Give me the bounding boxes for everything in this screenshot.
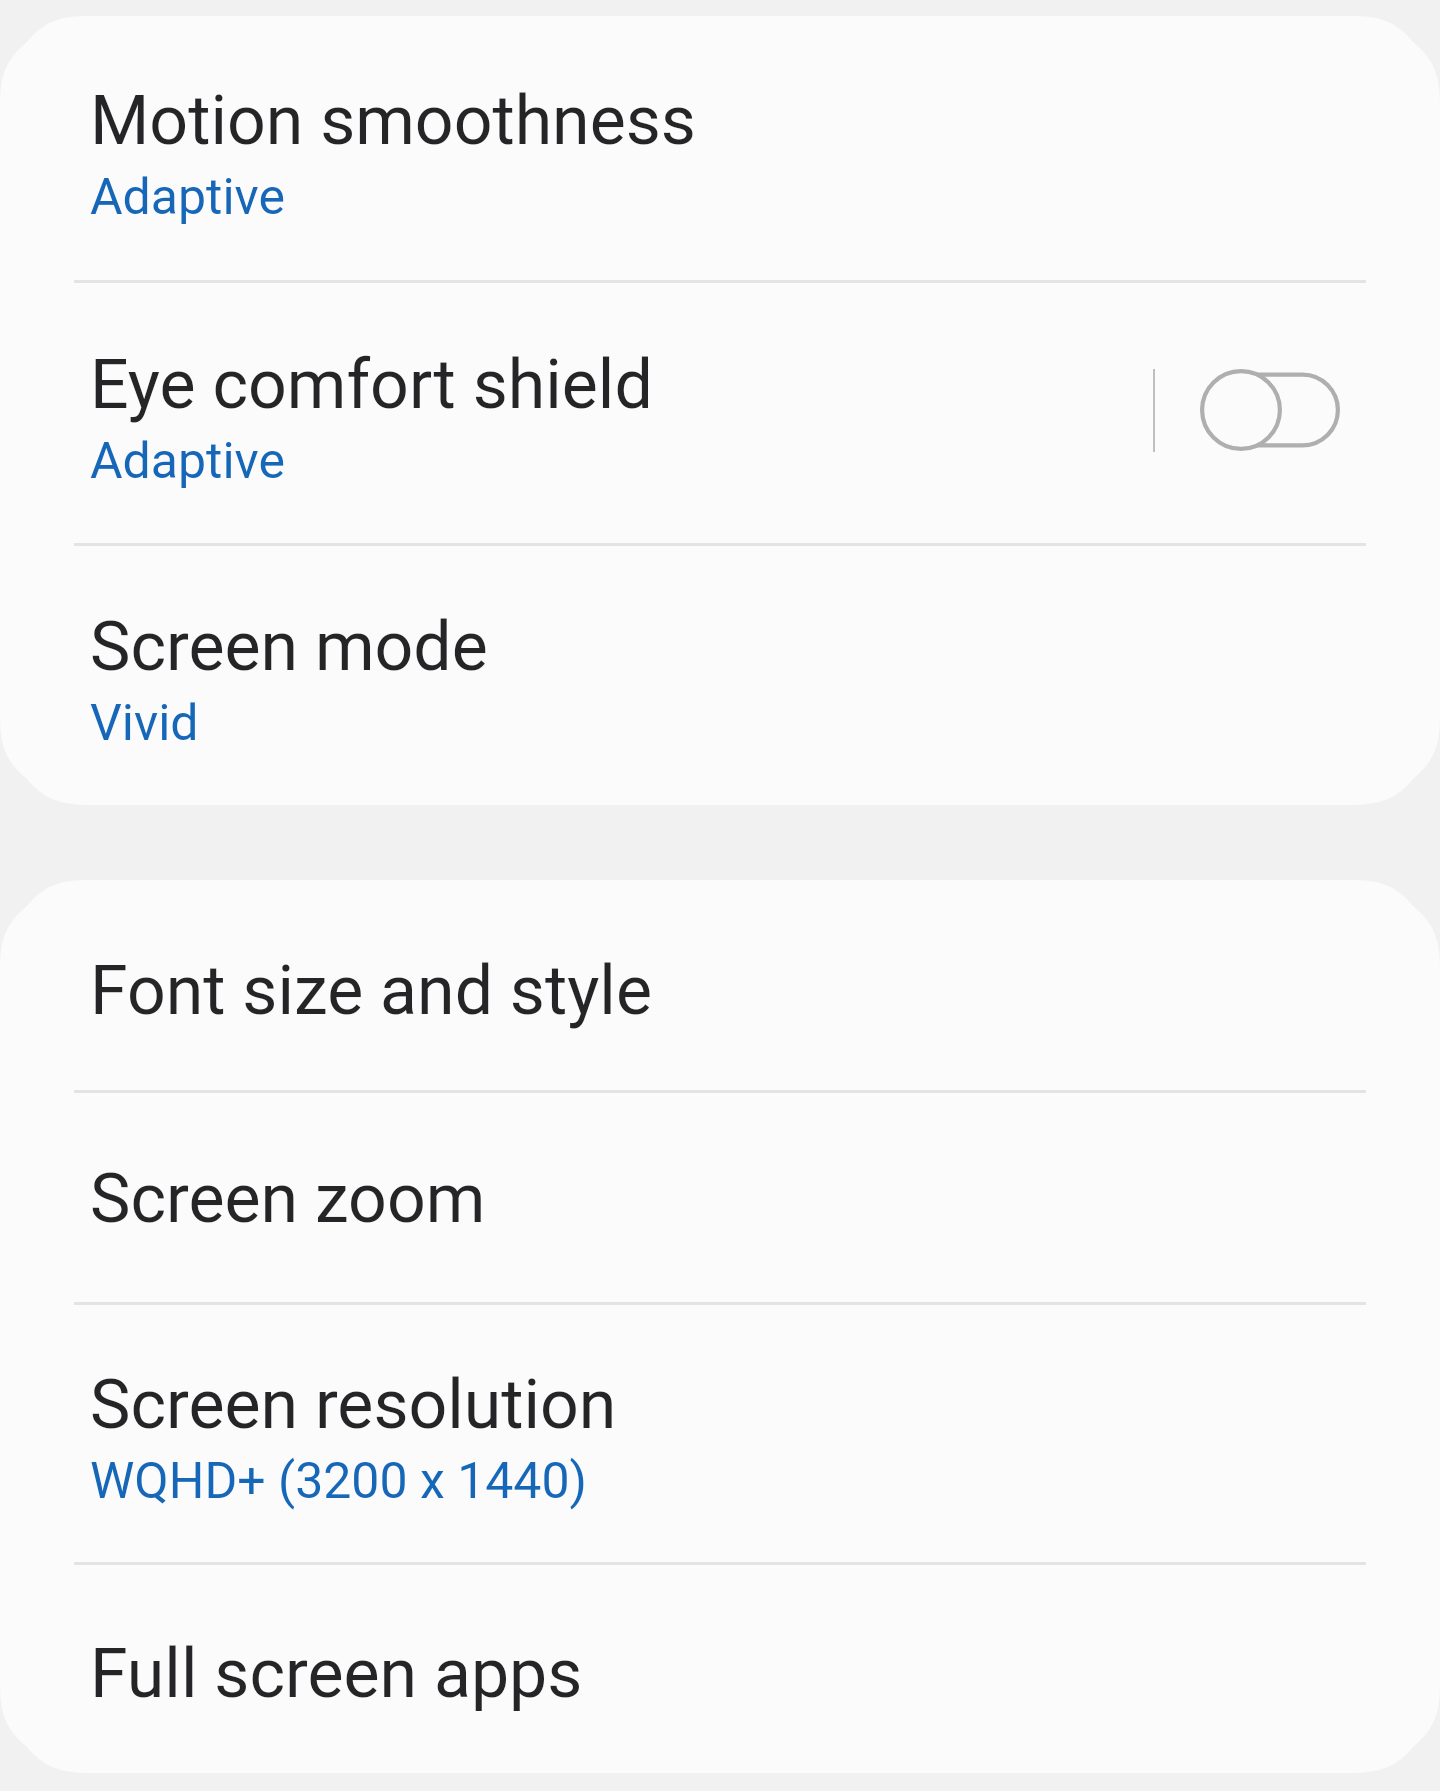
staticText: Motion smoothness (90, 81, 696, 161)
staticText: Screen mode (90, 607, 488, 687)
button[interactable]: Screen zoom (0, 1090, 1440, 1302)
staticText: Eye comfort shield (90, 345, 653, 425)
staticText: Font size and style (90, 951, 652, 1031)
staticText: Full screen apps (90, 1634, 583, 1714)
button[interactable]: Screen resolution (0, 1302, 1440, 1562)
button[interactable]: Eye comfort shield (0, 280, 1440, 543)
button[interactable]: Screen mode (0, 543, 1440, 805)
staticText: Adaptive (90, 168, 286, 227)
staticText: Vivid (90, 694, 199, 753)
staticText: Adaptive (90, 432, 286, 491)
button[interactable]: Font size and style (0, 880, 1440, 1090)
staticText: Screen resolution (90, 1365, 617, 1445)
staticText: WQHD+ (3200 x 1440) (90, 1452, 587, 1511)
staticText: Screen zoom (90, 1159, 486, 1239)
button[interactable]: Motion smoothness (0, 16, 1440, 280)
button[interactable]: Full screen apps (0, 1562, 1440, 1772)
button[interactable]: Eye comfort shield toggle, off (1200, 369, 1340, 451)
